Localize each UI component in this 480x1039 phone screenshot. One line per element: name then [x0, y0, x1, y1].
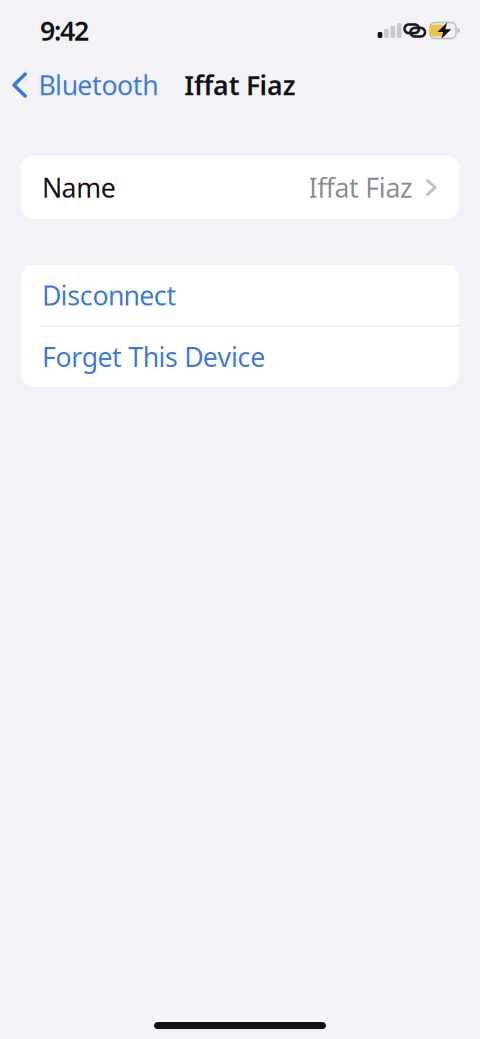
staticText: Disconnect: [42, 277, 176, 313]
button[interactable]: Disconnect: [21, 265, 459, 325]
button[interactable]: Name: [21, 156, 459, 219]
staticText: Name: [42, 170, 116, 205]
staticText: 9:42: [40, 13, 89, 48]
staticText: Iffat Fiaz: [184, 67, 296, 103]
staticText: Iffat Fiaz: [309, 170, 413, 205]
button[interactable]: Forget This Device: [21, 326, 459, 387]
staticText: Bluetooth: [38, 67, 158, 103]
staticText: Forget This Device: [42, 339, 265, 374]
button[interactable]: Bluetooth: [0, 67, 158, 103]
